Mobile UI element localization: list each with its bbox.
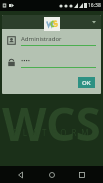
button[interactable]: Recent apps bbox=[73, 166, 91, 183]
button[interactable]: Select server bbox=[90, 18, 98, 26]
staticText: P L A T F O R M bbox=[13, 127, 90, 138]
staticText: 16:38 bbox=[88, 2, 101, 9]
button[interactable]: Home bbox=[43, 166, 61, 183]
staticText: OK bbox=[82, 79, 91, 87]
button[interactable]: Administrador bbox=[7, 35, 96, 46]
button[interactable]: Back bbox=[12, 166, 30, 183]
button[interactable]: •••• bbox=[7, 57, 96, 68]
staticText: •••• bbox=[21, 57, 31, 65]
staticText: Administrador bbox=[21, 35, 62, 43]
staticText: WCS bbox=[2, 92, 101, 155]
button[interactable]: OK bbox=[78, 77, 95, 88]
